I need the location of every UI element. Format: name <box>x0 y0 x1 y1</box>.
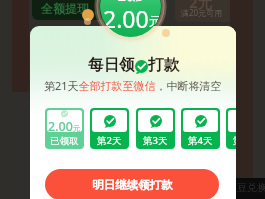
staticText: 2元 <box>189 0 213 12</box>
staticText: 第3天 <box>143 134 168 147</box>
staticText: 第2天 <box>97 134 122 147</box>
staticText: 打款 <box>148 55 179 75</box>
staticText: 已领 <box>117 0 135 2</box>
staticText: 2.00元 <box>48 118 81 132</box>
button[interactable]: 第5天 <box>226 108 236 149</box>
button[interactable]: 2.00元 <box>45 108 84 149</box>
staticText: 第5天 <box>233 134 236 147</box>
button[interactable]: 第3天 <box>136 108 175 149</box>
button[interactable]: 明日继续领打款 <box>45 169 219 199</box>
button[interactable]: 第2天 <box>90 108 129 149</box>
staticText: 全额提现 <box>41 1 89 16</box>
staticText: 第21天全部打款至微信，中断将清空 <box>44 78 222 93</box>
staticText: 2.00元 <box>103 3 161 34</box>
staticText: 每日领 <box>88 55 135 75</box>
staticText: 豆兑换 <box>237 181 265 194</box>
button[interactable]: 已领 <box>100 0 161 37</box>
staticText: 满20元可用 <box>181 7 223 18</box>
staticText: 第4天 <box>188 134 213 147</box>
button[interactable]: 第4天 <box>181 108 220 149</box>
staticText: 明日继续领打款 <box>92 178 173 192</box>
staticText: 已领取 <box>50 135 79 147</box>
